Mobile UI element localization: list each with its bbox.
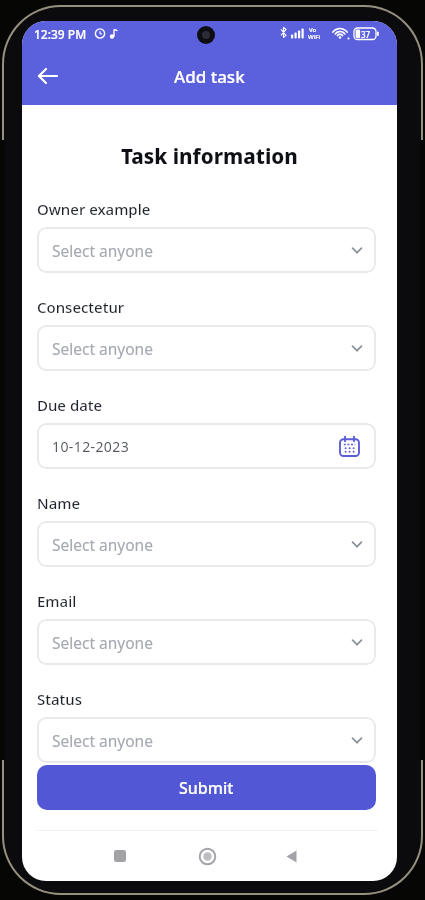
staticText: Email <box>37 591 77 611</box>
staticText: Select anyone <box>52 338 153 359</box>
staticText: 10-12-2023 <box>52 437 130 456</box>
staticText: WiFi <box>308 33 321 41</box>
button[interactable] <box>195 844 219 868</box>
button[interactable] <box>108 844 132 868</box>
staticText: Due date <box>37 395 103 415</box>
staticText: Owner example <box>37 199 151 219</box>
button[interactable]: Submit <box>37 765 376 810</box>
staticText: Name <box>37 493 81 513</box>
button[interactable]: Select anyone <box>37 717 376 763</box>
button[interactable]: Select anyone <box>37 227 376 273</box>
staticText: Status <box>37 689 83 709</box>
staticText: Select anyone <box>52 632 153 653</box>
staticText: Consectetur <box>37 297 125 317</box>
button[interactable] <box>30 58 66 94</box>
button[interactable] <box>279 844 303 868</box>
button[interactable]: 10-12-2023 <box>37 423 376 469</box>
staticText: Add task <box>174 65 245 88</box>
staticText: 12:39 PM <box>34 26 87 42</box>
staticText: Select anyone <box>52 730 153 751</box>
staticText: Select anyone <box>52 240 153 261</box>
button[interactable]: Select anyone <box>37 325 376 371</box>
staticText: Task information <box>121 142 298 170</box>
staticText: Submit <box>179 777 234 799</box>
button[interactable]: Select anyone <box>37 619 376 665</box>
staticText: 37 <box>361 29 371 40</box>
staticText: Vo <box>309 26 317 34</box>
button[interactable]: Select anyone <box>37 521 376 567</box>
staticText: Select anyone <box>52 534 153 555</box>
